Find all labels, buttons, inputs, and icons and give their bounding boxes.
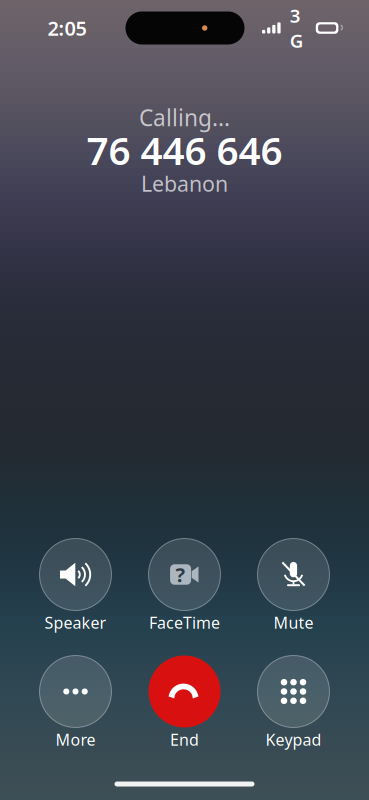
staticText: FaceTime bbox=[149, 612, 220, 633]
staticText: Speaker bbox=[44, 612, 106, 633]
staticText: Calling... bbox=[139, 102, 230, 132]
staticText: Keypad bbox=[265, 729, 321, 750]
staticText: More bbox=[55, 729, 95, 750]
staticText: End bbox=[170, 729, 199, 750]
button[interactable]: ? bbox=[130, 537, 239, 635]
button[interactable]: End bbox=[130, 654, 239, 752]
staticText: ? bbox=[176, 561, 186, 588]
button[interactable]: Mute bbox=[239, 537, 348, 635]
staticText: Lebanon bbox=[141, 169, 228, 198]
staticText: Mute bbox=[273, 612, 313, 633]
staticText: 2:05 bbox=[47, 15, 86, 41]
staticText: 3G bbox=[290, 3, 304, 53]
button[interactable]: Speaker bbox=[21, 537, 130, 635]
button[interactable]: More bbox=[21, 654, 130, 752]
button[interactable]: Keypad bbox=[239, 654, 348, 752]
staticText: 76 446 646 bbox=[86, 124, 282, 176]
